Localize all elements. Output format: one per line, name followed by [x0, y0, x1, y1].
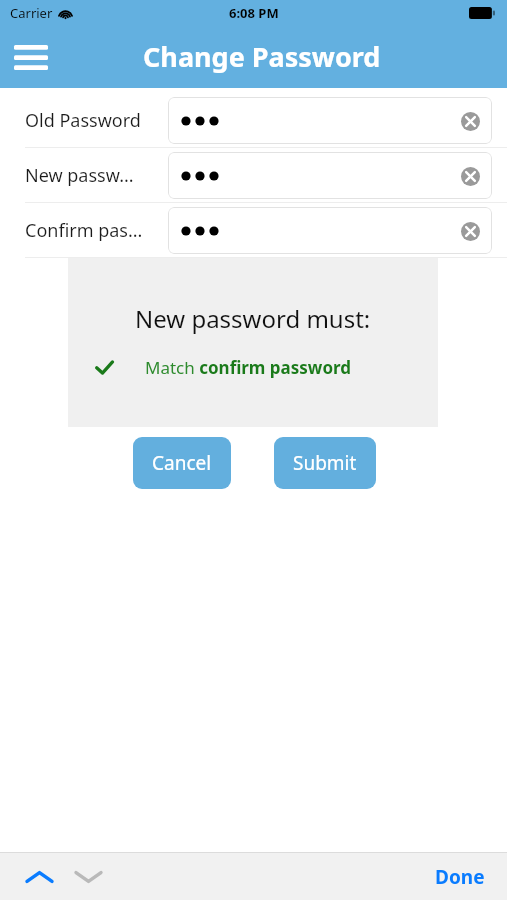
button[interactable]: Clear text	[168, 97, 492, 144]
button[interactable]: Clear text	[168, 207, 492, 254]
button[interactable]: Cancel	[133, 437, 231, 489]
staticText: 6:08 PM	[229, 4, 279, 22]
staticText: Submit	[293, 450, 357, 476]
staticText: Carrier	[10, 4, 53, 22]
staticText: New passw...	[25, 163, 134, 188]
button[interactable]: Done	[427, 858, 493, 896]
button[interactable]: Clear text	[457, 218, 483, 244]
button[interactable]: Clear text	[457, 163, 483, 189]
staticText: Old Password	[25, 108, 141, 133]
staticText: Done	[435, 864, 485, 890]
button[interactable]: Clear text	[457, 108, 483, 134]
button[interactable]: Menu	[8, 37, 54, 77]
staticText: Change Password	[143, 38, 381, 75]
staticText: Cancel	[152, 450, 212, 476]
button[interactable]: Next field	[67, 857, 109, 897]
button[interactable]: Clear text	[168, 152, 492, 199]
staticText: Match confirm password	[145, 356, 352, 379]
staticText: New password must:	[135, 302, 371, 335]
staticText: Confirm pas...	[25, 218, 143, 243]
button[interactable]: Submit	[274, 437, 376, 489]
button[interactable]: Previous field	[18, 857, 60, 897]
